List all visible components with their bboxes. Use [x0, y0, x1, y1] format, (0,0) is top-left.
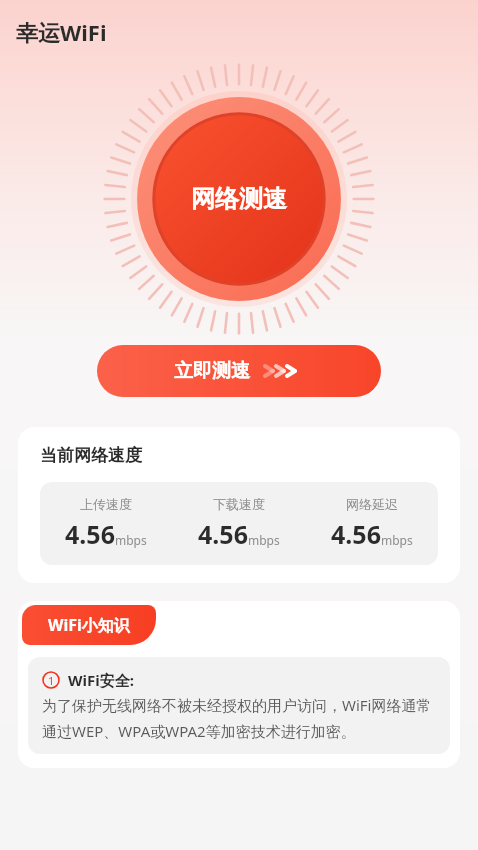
staticText: WiFi小知识: [48, 614, 130, 636]
staticText: 为了保护无线网络不被未经授权的用户访问，WiFi网络通常通过WEP、WPA或WP…: [42, 695, 436, 741]
button[interactable]: 立即测速: [97, 345, 381, 397]
staticText: 幸运WiFi: [16, 17, 107, 47]
staticText: mbps: [248, 532, 280, 548]
staticText: WiFi安全:: [68, 670, 134, 690]
button[interactable]: WiFi小知识: [22, 605, 156, 645]
staticText: 网络测速: [191, 184, 287, 214]
button[interactable]: 网络测速: [104, 64, 374, 334]
staticText: 下载速度: [213, 496, 265, 512]
staticText: 4.56: [65, 517, 115, 551]
staticText: 网络延迟: [346, 496, 398, 512]
staticText: mbps: [381, 532, 413, 548]
staticText: 上传速度: [80, 496, 132, 512]
staticText: 当前网络速度: [40, 445, 142, 466]
staticText: mbps: [115, 532, 147, 548]
staticText: 4.56: [198, 517, 248, 551]
staticText: 4.56: [331, 517, 381, 551]
staticText: 1: [48, 673, 55, 688]
staticText: 立即测速: [174, 359, 250, 383]
